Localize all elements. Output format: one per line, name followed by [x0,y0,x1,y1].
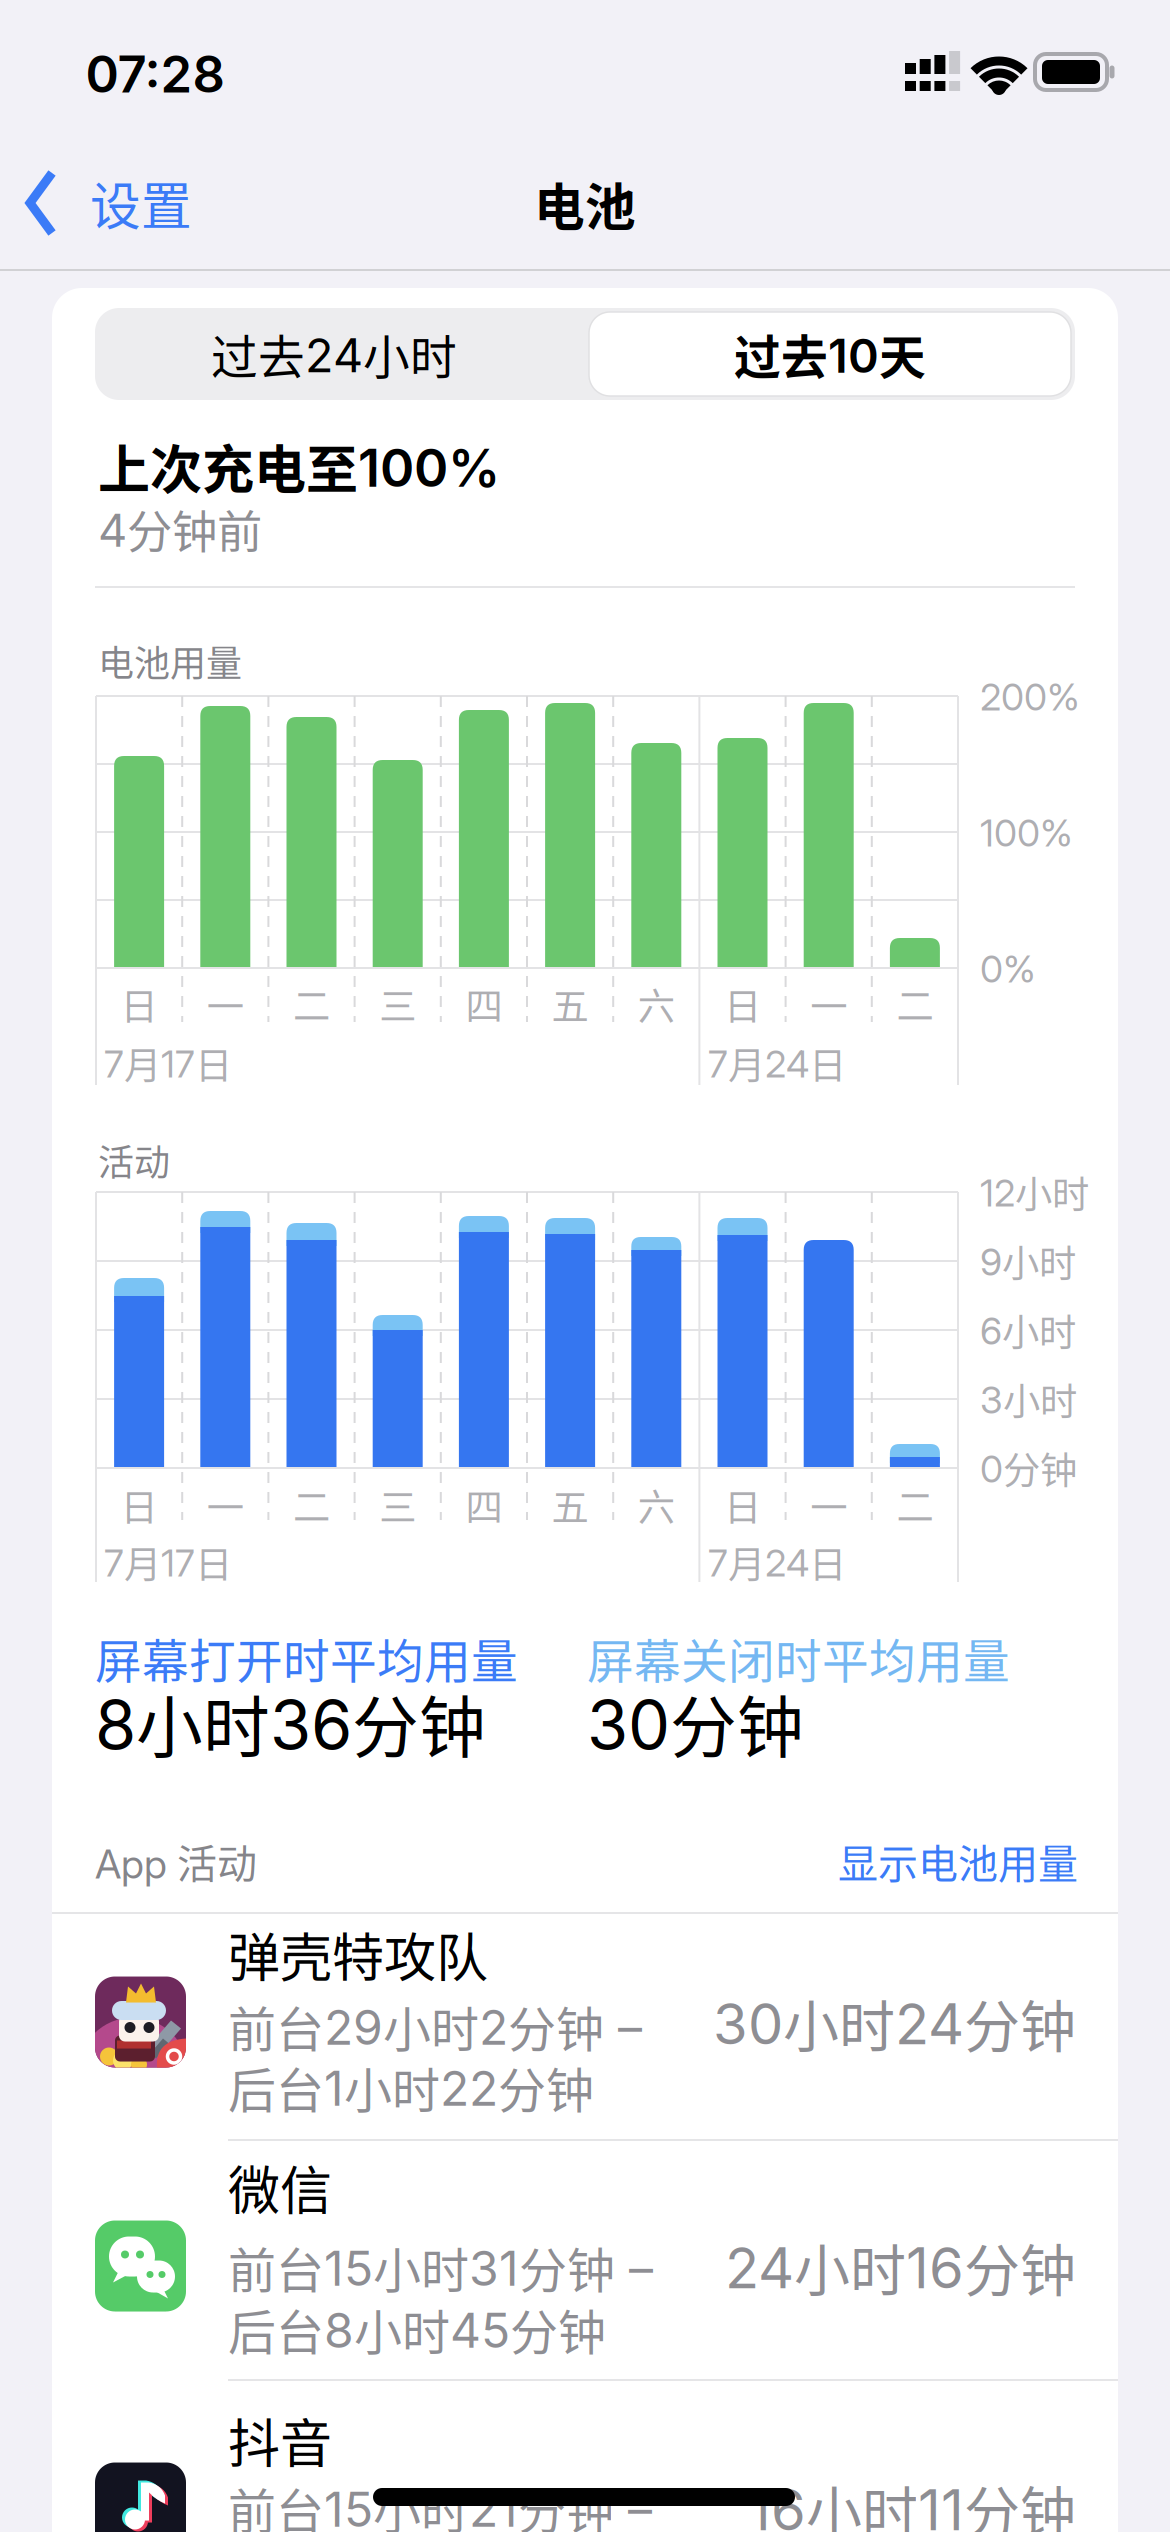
staticText: 电池用量 [98,636,242,686]
staticText: 4分钟前 [98,497,262,561]
staticText: 二 [293,1479,330,1531]
button[interactable]: 过去24小时 [94,312,574,396]
button[interactable]: 抖音 [0,2380,1170,2532]
staticText: 0分钟 [980,1442,1077,1494]
staticText: 30小时24分钟 [713,1983,1076,2062]
staticText: 前台15小时31分钟 – [228,2233,653,2301]
staticText: 一 [810,978,847,1030]
button[interactable]: 过去10天 [589,312,1071,396]
staticText: 四 [465,978,502,1030]
staticText: 弹壳特攻队 [228,1917,488,1991]
staticText: 六 [638,978,675,1030]
staticText: 抖音 [228,2403,332,2477]
staticText: 日 [724,978,761,1030]
staticText: 五 [552,1479,589,1531]
staticText: 24小时16分钟 [725,2227,1076,2306]
button[interactable]: 微信 [0,2140,1170,2380]
staticText: 3小时 [980,1373,1077,1425]
staticText: 9小时 [980,1235,1076,1287]
button[interactable]: 弹壳特攻队 [0,1913,1170,2140]
staticText: 7月17日 [104,1536,232,1588]
staticText: 7月24日 [708,1536,846,1588]
staticText: 后台8小时45分钟 [228,2295,606,2363]
staticText: 设置 [90,167,192,239]
staticText: 日 [121,1479,158,1531]
staticText: 前台15小时21分钟 – [228,2474,652,2532]
staticText: 30分钟 [587,1676,804,1770]
staticText: 07:28 [85,44,224,104]
staticText: 一 [810,1479,847,1531]
staticText: 三 [379,1479,416,1531]
staticText: 二 [896,1479,933,1531]
staticText: 六 [638,1479,675,1531]
button[interactable]: 显示电池用量 [838,1833,1078,1889]
staticText: 五 [552,978,589,1030]
staticText: 16小时11分钟 [748,2469,1076,2532]
staticText: 日 [121,978,158,1030]
staticText: 三 [379,978,416,1030]
staticText: 100% [980,811,1073,855]
staticText: 活动 [98,1135,170,1185]
staticText: 前台29小时2分钟 – [228,1992,642,2060]
staticText: 12小时 [980,1166,1089,1218]
staticText: 微信 [228,2150,332,2224]
staticText: 一 [207,978,244,1030]
staticText: 8小时36分钟 [95,1676,486,1770]
staticText: 二 [896,978,933,1030]
staticText: 上次充电至100% [98,429,500,503]
staticText: 过去24小时 [211,321,457,387]
staticText: 电池 [534,168,636,240]
staticText: 200% [980,675,1080,719]
staticText: 二 [293,978,330,1030]
staticText: 显示电池用量 [838,1833,1078,1889]
staticText: 7月17日 [104,1037,232,1089]
staticText: 过去10天 [734,321,926,387]
staticText: 6小时 [980,1304,1076,1356]
staticText: 0% [980,947,1036,991]
staticText: 后台1小时22分钟 [228,2053,594,2121]
staticText: 四 [465,1479,502,1531]
staticText: 一 [207,1479,244,1531]
button[interactable]: 设置 [0,169,220,237]
staticText: 日 [724,1479,761,1531]
staticText: 屏幕打开时平均用量 [95,1625,518,1691]
staticText: App 活动 [95,1833,257,1889]
staticText: 屏幕关闭时平均用量 [587,1625,1010,1691]
staticText: 7月24日 [708,1037,846,1089]
